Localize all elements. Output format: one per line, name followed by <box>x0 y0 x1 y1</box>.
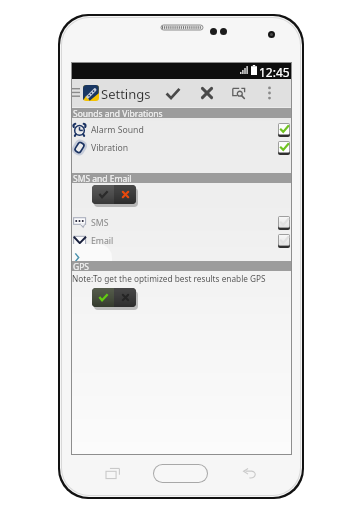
button[interactable]: Enabled toggle <box>92 288 140 312</box>
button[interactable]: Disabled toggle <box>92 185 140 209</box>
button[interactable]: Vibration <box>72 139 291 156</box>
staticText: SMS and Email <box>73 173 132 183</box>
button[interactable]: Find on page <box>223 79 254 107</box>
button[interactable]: Recent apps <box>106 468 120 479</box>
staticText: Email <box>91 235 114 247</box>
button[interactable]: Back <box>243 468 257 479</box>
staticText: Settings <box>101 85 151 103</box>
staticText: Alarm Sound <box>91 124 144 136</box>
button[interactable]: Alarm Sound <box>72 121 291 138</box>
button[interactable]: Accept <box>157 79 189 107</box>
staticText: GPS <box>73 261 89 271</box>
staticText: SMS <box>91 217 109 229</box>
button[interactable]: Navigation menu <box>72 88 80 97</box>
staticText: Sounds and Vibrations <box>73 108 163 118</box>
button[interactable]: SMS <box>72 214 291 231</box>
staticText: Vibration <box>91 142 129 154</box>
button[interactable]: More options <box>258 79 280 107</box>
staticText: Note:To get the optimized best results e… <box>72 273 266 284</box>
staticText: 12:45 <box>259 64 290 80</box>
button[interactable]: Cancel <box>191 79 222 107</box>
button[interactable]: Email <box>72 232 291 249</box>
